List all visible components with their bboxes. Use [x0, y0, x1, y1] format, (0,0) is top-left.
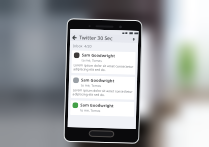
staticText: Twitter 30 Sec — [79, 34, 113, 42]
button[interactable]: Sam Goodwright — [70, 100, 134, 117]
staticText: Sam Goodwright — [82, 52, 116, 58]
staticText: Inbox 4/20 — [73, 43, 92, 49]
staticText: Sam Goodwright — [80, 102, 114, 108]
button[interactable]: Sam Goodwright — [71, 50, 136, 75]
staticText: Lorem ipsum dolor sit amet consectetur a… — [73, 63, 133, 73]
staticText: to me, Tomas — [81, 58, 103, 63]
staticText: to me, Tomas — [80, 108, 101, 113]
staticText: to me, Tomas — [81, 83, 102, 88]
button[interactable]: Back — [70, 33, 78, 41]
staticText: Lorem ipsum dolor sit amet consectetur a… — [73, 88, 133, 98]
button[interactable]: Sam Goodwright — [70, 75, 135, 100]
staticText: Sam Goodwright — [81, 77, 115, 83]
button[interactable]: More options — [130, 36, 137, 43]
